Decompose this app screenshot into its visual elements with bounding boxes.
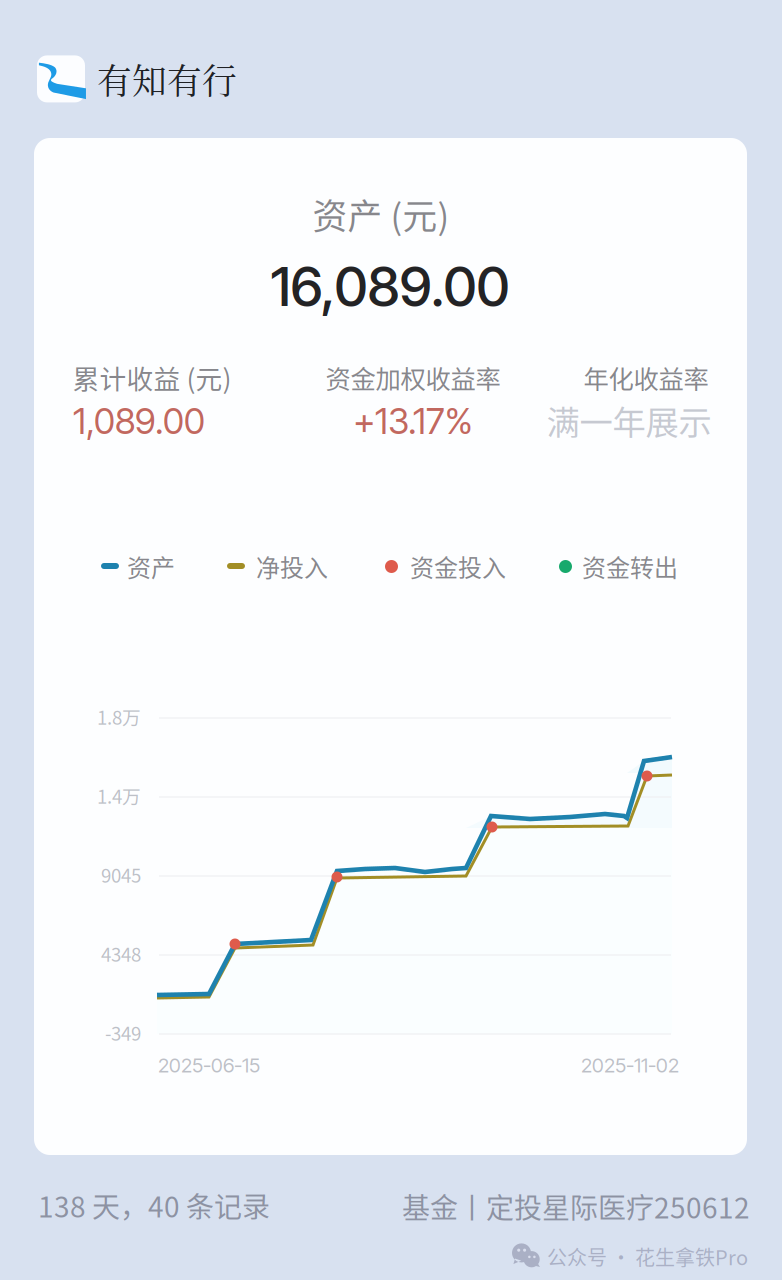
staticText: 138 天，40 条记录	[38, 1185, 270, 1225]
staticText: 资金加权收益率	[325, 359, 500, 396]
staticText: 净投入	[256, 549, 328, 584]
staticText: -349	[105, 1019, 141, 1046]
staticText: 2025-11-02	[581, 1053, 679, 1077]
staticText: 1.4万	[97, 782, 141, 809]
staticText: 资金转出	[582, 549, 678, 584]
staticText: 基金丨定投星际医疗250612	[402, 1186, 750, 1226]
staticText: 资金投入	[410, 549, 506, 584]
staticText: 16,089.00	[270, 253, 509, 319]
staticText: 9045	[101, 861, 141, 888]
button[interactable]: 有知有行	[37, 54, 237, 104]
staticText: 资产	[127, 549, 175, 584]
staticText: 2025-06-15	[158, 1053, 260, 1077]
staticText: +13.17%	[353, 399, 473, 443]
staticText: 累计收益 (元)	[72, 358, 231, 397]
staticText: 满一年展示	[546, 396, 711, 444]
staticText: 年化收益率	[583, 359, 708, 396]
staticText: 公众号 · 花生拿铁Pro	[547, 1242, 748, 1271]
staticText: 1,089.00	[73, 399, 205, 443]
staticText: 4348	[101, 940, 141, 967]
staticText: 资产 (元)	[312, 189, 449, 239]
staticText: 1.8万	[97, 703, 141, 730]
staticText: 有知有行	[97, 54, 237, 104]
